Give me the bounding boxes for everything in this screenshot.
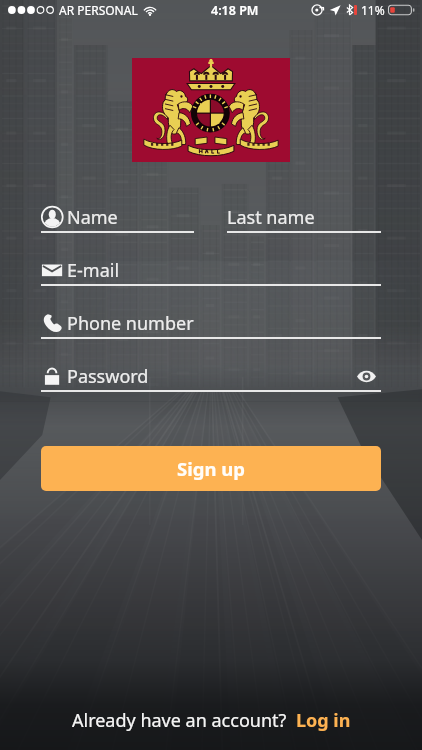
button[interactable]: Last name xyxy=(227,205,381,233)
staticText: AR PERSONAL xyxy=(59,2,138,18)
button[interactable]: E-mail xyxy=(41,258,381,286)
staticText: E-mail xyxy=(67,258,120,282)
button[interactable]: Show password xyxy=(351,364,381,388)
button[interactable]: Name xyxy=(41,205,194,233)
staticText: Last name xyxy=(227,205,315,229)
button[interactable]: Log in xyxy=(296,708,351,733)
staticText: Password xyxy=(67,364,149,388)
button[interactable]: Sign up xyxy=(41,446,381,491)
staticText: Sign up xyxy=(177,456,245,481)
staticText: Name xyxy=(67,205,118,229)
button[interactable]: Phone number xyxy=(41,311,381,339)
staticText: Log in xyxy=(296,708,351,733)
staticText: Already have an account? xyxy=(72,708,287,733)
staticText: 11% xyxy=(361,2,385,18)
staticText: Phone number xyxy=(67,311,194,335)
button[interactable]: Password xyxy=(41,364,381,392)
staticText: 4:18 PM xyxy=(211,2,259,19)
